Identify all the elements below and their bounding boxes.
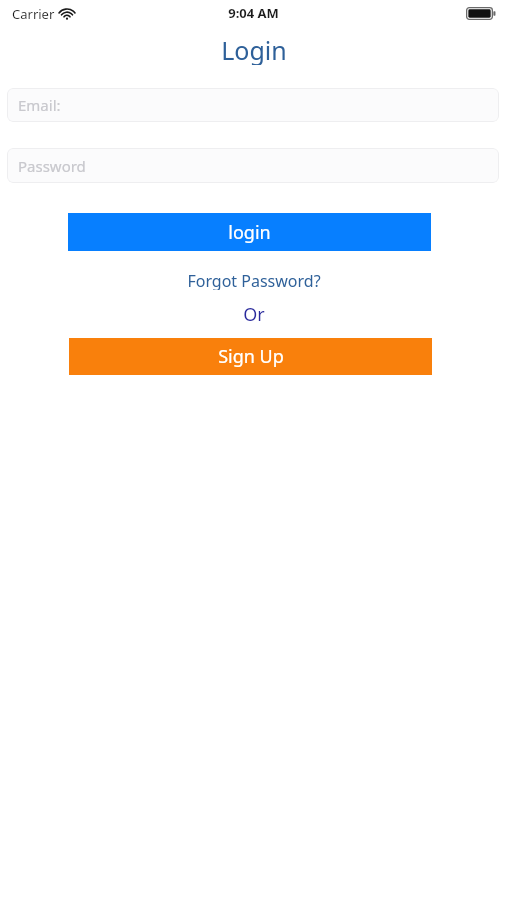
button[interactable]: Sign Up — [69, 338, 432, 375]
staticText: Password — [18, 156, 86, 176]
staticText: Carrier — [12, 5, 55, 23]
staticText: Forgot Password? — [187, 270, 321, 290]
button[interactable]: Email: — [7, 88, 499, 122]
button[interactable]: Password — [7, 148, 499, 183]
staticText: 9:04 AM — [228, 4, 279, 22]
staticText: Login — [221, 33, 287, 65]
staticText: Sign Up — [218, 344, 284, 369]
staticText: login — [228, 220, 271, 245]
staticText: Or — [243, 302, 265, 326]
staticText: Email: — [18, 95, 61, 115]
button[interactable]: login — [68, 213, 431, 251]
button[interactable]: Forgot Password? — [183, 268, 325, 292]
